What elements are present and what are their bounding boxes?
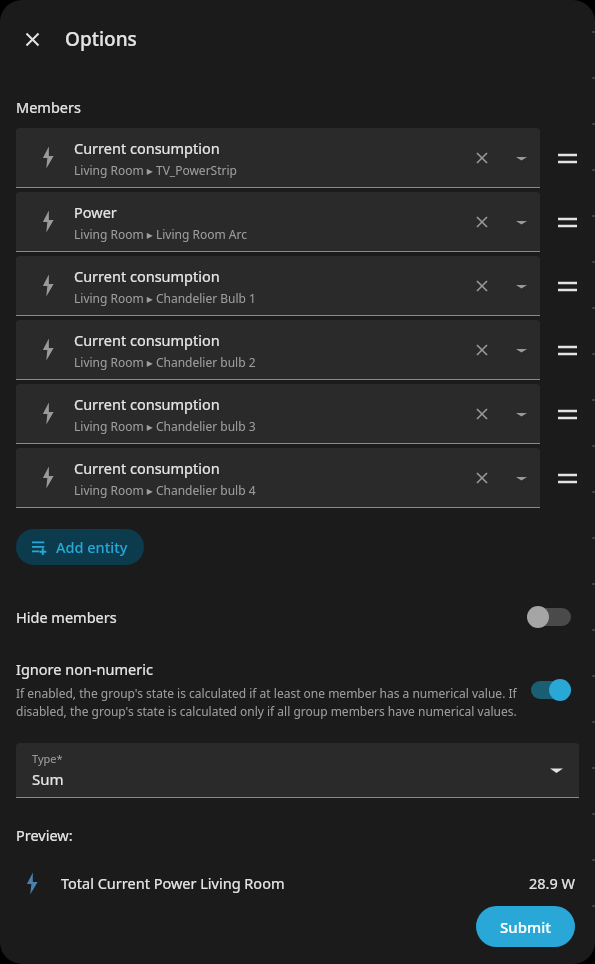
staticText: Hide members [16,607,527,627]
button[interactable]: Expand [502,267,540,305]
button[interactable]: Expand [502,203,540,241]
button[interactable]: Add entity [16,529,144,565]
button[interactable]: Expand [502,395,540,433]
staticText: Current consumption [74,458,220,478]
staticText: Living Room ▸ Chandelier bulb 4 [74,482,256,498]
button[interactable]: Power [16,192,540,252]
staticText: Current consumption [74,394,220,414]
staticText: Options [65,26,137,52]
button[interactable]: Clear [462,202,502,242]
button[interactable]: Submit [476,906,575,947]
button[interactable]: Current consumption [16,320,540,380]
button[interactable]: Reorder [540,320,595,380]
staticText: Members [16,97,81,117]
staticText: Sum [32,769,64,789]
button[interactable]: Close [8,15,56,63]
button[interactable]: Expand [502,459,540,497]
button[interactable]: Total Current Power Living Room [0,864,595,902]
button[interactable]: Reorder [540,128,595,188]
button[interactable]: Ignore non-numeric [0,659,595,720]
staticText: Living Room ▸ Chandelier bulb 3 [74,418,256,434]
button[interactable]: Ignore non-numeric [527,675,579,705]
button[interactable]: Clear [462,458,502,498]
staticText: Submit [500,917,551,937]
button[interactable]: Expand [502,139,540,177]
staticText: Add entity [56,537,128,557]
button[interactable]: Hide members [527,602,579,632]
button[interactable]: Current consumption [16,448,540,508]
button[interactable]: Current consumption [16,384,540,444]
button[interactable]: Reorder [540,256,595,316]
staticText: Ignore non-numeric [16,659,153,679]
button[interactable]: Reorder [540,384,595,444]
button[interactable]: Reorder [540,192,595,252]
staticText: Preview: [16,825,73,845]
staticText: Living Room ▸ Chandelier bulb 2 [74,354,256,370]
staticText: Power [74,202,117,222]
staticText: If enabled, the group's state is calcula… [16,685,521,720]
staticText: 28.9 W [528,873,575,893]
staticText: Current consumption [74,330,220,350]
button[interactable]: Type* [16,743,579,798]
button[interactable]: Clear [462,394,502,434]
button[interactable]: Hide members [0,598,595,636]
button[interactable]: Current consumption [16,128,540,188]
staticText: Current consumption [74,138,220,158]
button[interactable]: Current consumption [16,256,540,316]
button[interactable]: Expand [502,331,540,369]
staticText: Living Room ▸ Living Room Arc [74,226,247,242]
staticText: Type* [32,751,63,766]
staticText: Living Room ▸ Chandelier Bulb 1 [74,290,256,306]
button[interactable]: Reorder [540,448,595,508]
staticText: Current consumption [74,266,220,286]
staticText: Total Current Power Living Room [61,873,528,893]
staticText: Living Room ▸ TV_PowerStrip [74,162,237,178]
button[interactable]: Clear [462,330,502,370]
button[interactable]: Clear [462,138,502,178]
button[interactable]: Clear [462,266,502,306]
